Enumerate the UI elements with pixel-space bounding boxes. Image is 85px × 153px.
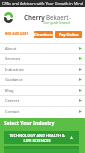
staticText: Industries xyxy=(5,67,24,72)
staticText: ™ xyxy=(69,17,72,21)
button[interactable]: Contact xyxy=(0,106,85,116)
staticText: Blog xyxy=(5,88,14,93)
button[interactable] xyxy=(4,146,79,153)
button[interactable]: 800.849.6281 xyxy=(5,31,29,36)
staticText: Guidance xyxy=(5,77,23,82)
staticText: About xyxy=(5,46,17,51)
other: Expand xyxy=(70,136,73,139)
button[interactable]: TECHNOLOGY AND HEALTH & LIFE SCIENCES xyxy=(4,131,79,144)
button[interactable]: Pay Online xyxy=(55,31,82,38)
staticText: Services xyxy=(5,56,21,61)
staticText: Bekaert xyxy=(46,13,69,21)
button[interactable]: Blog xyxy=(0,85,85,95)
button[interactable]: Directions xyxy=(34,31,53,38)
button[interactable]: Industries xyxy=(0,64,85,74)
staticText: TECHNOLOGY AND HEALTH & LIFE SCIENCES xyxy=(9,133,65,143)
staticText: Careers xyxy=(5,98,20,103)
button[interactable]: Guidance xyxy=(0,74,85,84)
staticText: CPAs and Advisors with Your Growth in Mi… xyxy=(2,1,84,6)
staticText: Select Your Industry xyxy=(4,120,55,127)
staticText: Directions xyxy=(34,32,53,37)
button[interactable]: About xyxy=(0,43,85,53)
staticText: Cherry xyxy=(24,13,45,21)
staticText: Your guide forward xyxy=(43,21,71,25)
staticText: Pay Online xyxy=(59,32,79,37)
button[interactable]: Services xyxy=(0,53,85,63)
button[interactable]: Careers xyxy=(0,95,85,105)
staticText: Contact xyxy=(5,109,20,114)
